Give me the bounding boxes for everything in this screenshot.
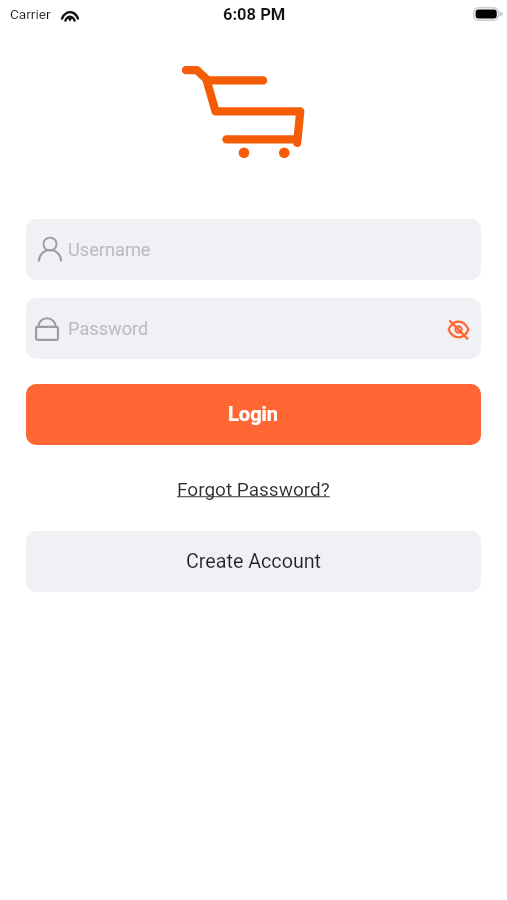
staticText: Username	[68, 239, 151, 260]
button[interactable]: Forgot Password?	[173, 476, 334, 502]
button[interactable]: Show password	[438, 314, 468, 344]
button[interactable]: Username	[26, 219, 481, 280]
staticText: Password	[68, 318, 149, 339]
staticText: Create Account	[186, 550, 322, 573]
staticText: Carrier	[10, 6, 51, 22]
button[interactable]: Create Account	[26, 531, 481, 592]
staticText: 6:08 PM	[223, 5, 286, 24]
button[interactable]: Password	[26, 298, 481, 359]
staticText: Login	[228, 402, 279, 425]
button[interactable]: Login	[26, 384, 481, 445]
